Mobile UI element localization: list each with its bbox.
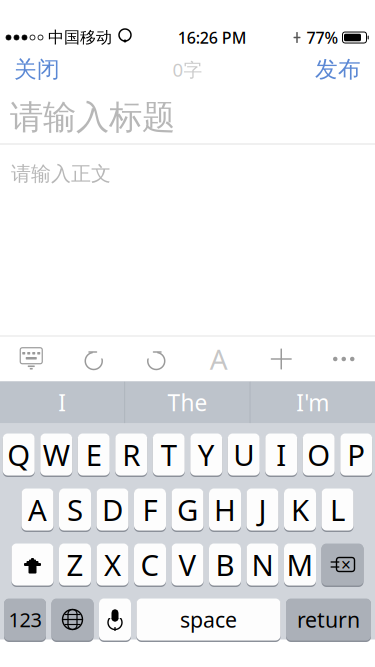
button[interactable]: C (134, 542, 166, 587)
button[interactable]: I (265, 432, 297, 477)
button[interactable]: G (171, 487, 203, 532)
staticText: Q (7, 435, 30, 474)
staticText: 77% (306, 27, 338, 48)
button[interactable]: Dictation (99, 597, 131, 642)
button[interactable]: Delete (321, 542, 363, 587)
button[interactable]: L (321, 487, 353, 532)
button[interactable]: M (284, 542, 316, 587)
staticText: return (297, 605, 360, 634)
button[interactable]: Hide keyboard (0, 336, 62, 381)
staticText: 关闭 (14, 56, 60, 83)
button[interactable]: Shift (11, 542, 53, 587)
button[interactable]: X (96, 542, 128, 587)
button[interactable]: I'm (251, 381, 375, 423)
button[interactable]: J (246, 487, 278, 532)
staticText: A (28, 490, 47, 529)
staticText: 16:26 PM (178, 27, 247, 48)
button[interactable]: N (246, 542, 278, 587)
staticText: K (291, 490, 309, 529)
button[interactable]: F (134, 487, 166, 532)
staticText: space (180, 605, 237, 634)
button[interactable]: Undo (62, 336, 125, 381)
staticText: T (161, 435, 177, 474)
button[interactable]: Text style (187, 336, 250, 381)
staticText: 中国移动 (48, 28, 112, 47)
staticText: E (86, 435, 102, 474)
staticText: A (210, 340, 228, 378)
button[interactable]: Numbers (4, 597, 46, 642)
button[interactable]: A (21, 487, 53, 532)
staticText: V (178, 545, 196, 584)
staticText: Y (198, 435, 215, 474)
button[interactable]: Redo (125, 336, 187, 381)
button[interactable]: return (286, 597, 371, 642)
staticText: 123 (8, 606, 41, 633)
button[interactable]: K (284, 487, 316, 532)
staticText: C (140, 545, 159, 584)
button[interactable]: R (115, 432, 147, 477)
staticText: H (214, 490, 236, 529)
button[interactable]: T (153, 432, 185, 477)
staticText: O (307, 435, 330, 474)
button[interactable]: Q (3, 432, 35, 477)
staticText: 0字 (172, 57, 202, 82)
staticText: R (122, 435, 140, 474)
button[interactable]: W (40, 432, 72, 477)
button[interactable]: More (312, 336, 375, 381)
staticText: W (43, 435, 70, 474)
staticText: N (251, 545, 273, 584)
staticText: I (58, 387, 66, 417)
staticText: I (276, 435, 286, 474)
staticText: × (341, 553, 351, 576)
button[interactable]: S (59, 487, 91, 532)
staticText: F (142, 490, 157, 529)
staticText: X (104, 545, 121, 584)
staticText: L (330, 490, 345, 529)
staticText: 请输入正文 (11, 161, 111, 186)
staticText: Z (66, 545, 83, 584)
staticText: 请输入标题 (10, 97, 175, 138)
button[interactable]: U (228, 432, 260, 477)
button[interactable]: H (209, 487, 241, 532)
staticText: G (177, 490, 198, 529)
staticText: The (167, 387, 207, 417)
staticText: 发布 (315, 56, 361, 83)
button[interactable]: The (125, 381, 250, 423)
button[interactable]: Y (190, 432, 222, 477)
button[interactable]: 发布 (301, 47, 375, 91)
staticText: S (67, 490, 83, 529)
button[interactable]: space (136, 597, 280, 642)
button[interactable]: Next keyboard (51, 597, 93, 642)
button[interactable]: O (303, 432, 335, 477)
button[interactable]: Insert (250, 336, 312, 381)
button[interactable]: D (96, 487, 128, 532)
button[interactable]: V (171, 542, 203, 587)
button[interactable]: E (78, 432, 110, 477)
staticText: I'm (296, 387, 329, 417)
button[interactable]: B (209, 542, 241, 587)
button[interactable]: P (340, 432, 372, 477)
staticText: D (102, 490, 123, 529)
button[interactable]: 关闭 (0, 47, 74, 91)
staticText: B (215, 545, 234, 584)
staticText: P (347, 435, 365, 474)
staticText: M (286, 545, 313, 584)
staticText: U (233, 435, 254, 474)
button[interactable]: I (0, 381, 124, 423)
button[interactable]: Z (59, 542, 91, 587)
staticText: J (258, 490, 266, 529)
